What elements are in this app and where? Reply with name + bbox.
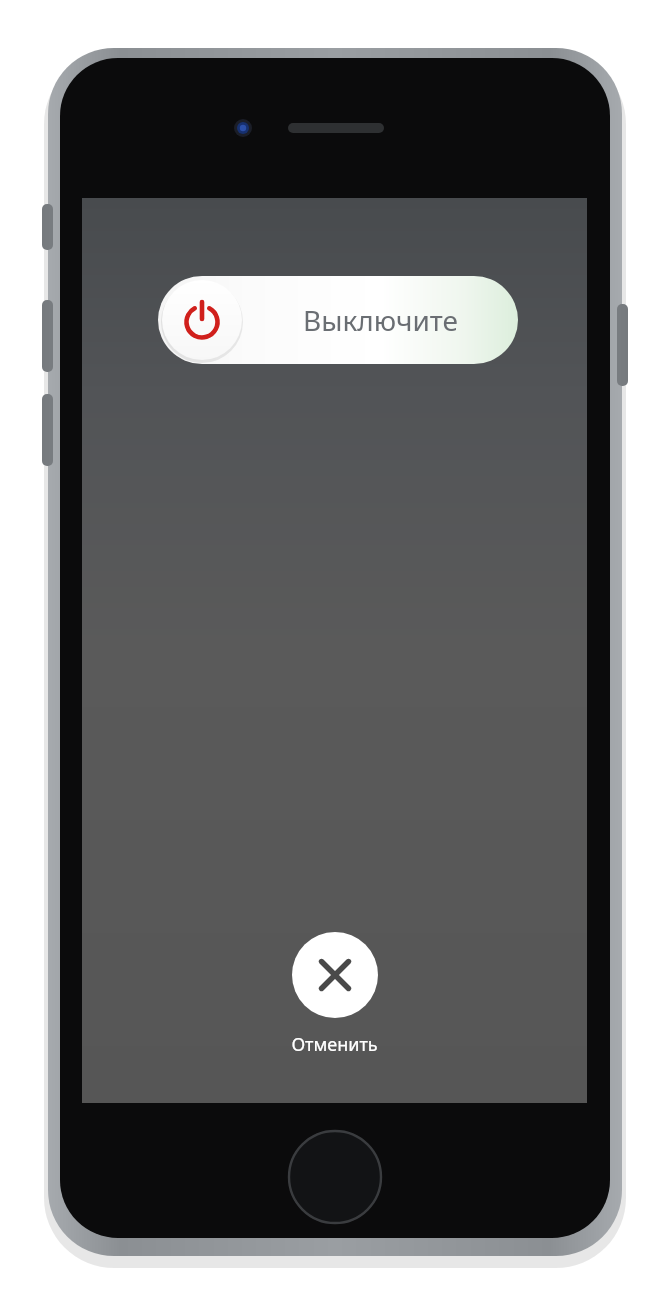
button[interactable]: Выключите — [158, 276, 518, 364]
staticText: Отменить — [291, 1032, 378, 1057]
button[interactable]: Отменить — [291, 932, 378, 1057]
staticText: Выключите — [303, 301, 458, 339]
